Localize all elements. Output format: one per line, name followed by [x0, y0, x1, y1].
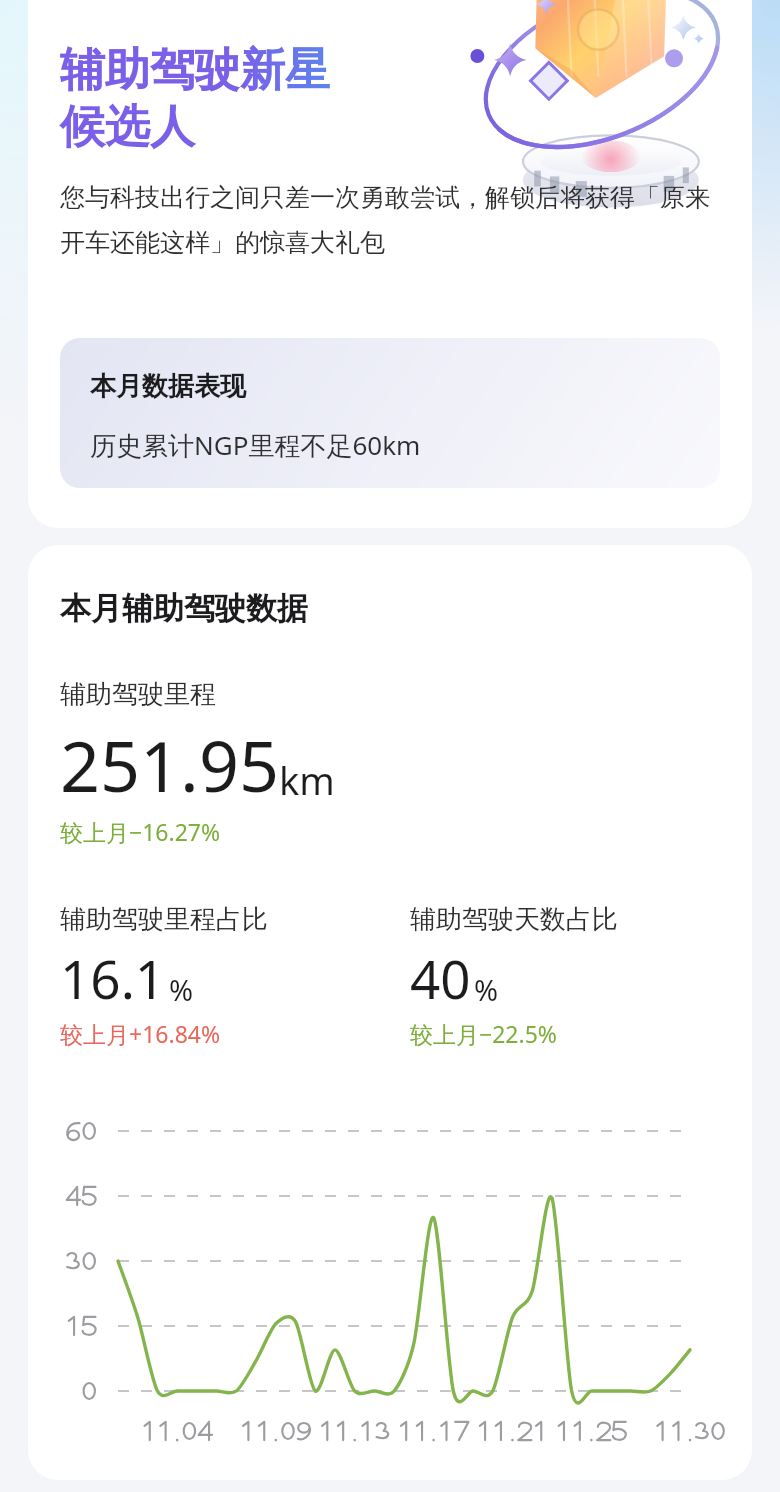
staticText: 251.95	[60, 717, 279, 812]
staticText: 候选人	[60, 99, 195, 156]
staticText: 辅助驾驶里程占比	[60, 903, 268, 936]
staticText: 16.1	[60, 942, 166, 1014]
staticText: km	[279, 754, 335, 806]
button[interactable]: Reward illustration	[28, 0, 752, 528]
staticText: 较上月−22.5%	[410, 1018, 557, 1049]
staticText: 历史累计NGP里程不足60km	[90, 427, 421, 463]
staticText: 较上月+16.84%	[60, 1018, 221, 1049]
staticText: 辅助驾驶天数占比	[410, 903, 618, 936]
button[interactable]: 本月数据表现	[60, 338, 720, 488]
staticText: 本月数据表现	[90, 370, 246, 403]
staticText: 较上月−16.27%	[60, 816, 221, 847]
staticText: 40	[410, 942, 471, 1014]
staticText: 辅助驾驶里程	[60, 678, 216, 711]
staticText: 本月辅助驾驶数据	[60, 589, 308, 628]
button[interactable]: 辅助驾驶天数占比	[410, 903, 750, 1049]
staticText: 您与科技出行之间只差一次勇敢尝试，解锁后将获得「原来 开车还能这样」的惊喜大礼包	[60, 182, 710, 258]
staticText: 辅助驾驶新星	[60, 42, 330, 99]
button[interactable]: 本月辅助驾驶数据	[28, 545, 752, 1480]
staticText: %	[169, 970, 194, 1009]
other: Reward illustration	[444, 0, 742, 208]
staticText: %	[474, 970, 499, 1009]
button[interactable]: 辅助驾驶里程占比	[60, 903, 410, 1049]
